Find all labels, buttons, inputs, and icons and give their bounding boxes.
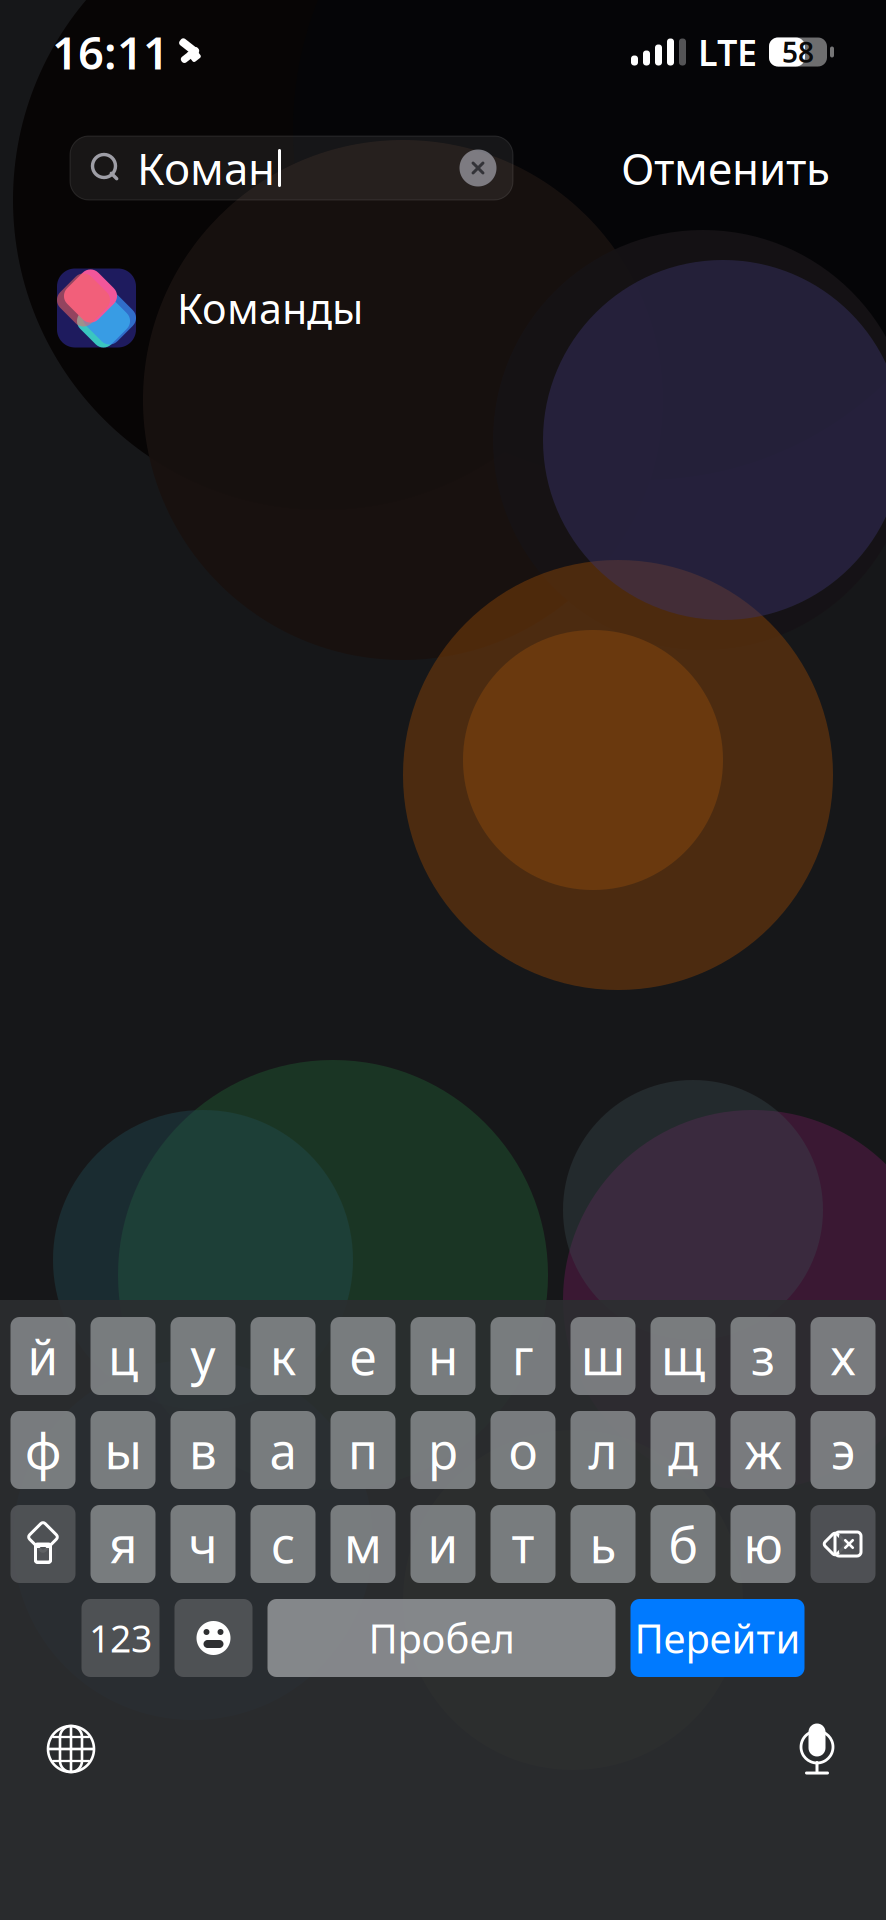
staticText: ь [589,1511,616,1577]
staticText: 16:11 [52,22,169,82]
staticText: н [428,1323,458,1389]
button[interactable]: х [810,1317,875,1395]
staticText: ч [188,1511,217,1577]
staticText: м [344,1511,382,1577]
staticText: т [511,1511,534,1577]
staticText: ю [743,1511,782,1577]
button[interactable]: Пробел [267,1599,615,1677]
staticText: с [271,1511,295,1577]
staticText: о [508,1417,537,1483]
button[interactable]: ь [570,1505,635,1583]
staticText: Отменить [621,139,830,197]
button[interactable]: м [330,1505,395,1583]
button[interactable]: Команды [0,258,886,358]
staticText: у [190,1323,215,1389]
button[interactable]: ш [570,1317,635,1395]
staticText: л [588,1417,617,1483]
button[interactable]: ю [730,1505,795,1583]
staticText: и [427,1511,458,1577]
button[interactable]: в [170,1411,235,1489]
staticText: щ [661,1323,705,1389]
button[interactable]: л [570,1411,635,1489]
button[interactable]: б [650,1505,715,1583]
staticText: е [349,1323,376,1389]
button[interactable]: з [730,1317,795,1395]
button[interactable]: щ [650,1317,715,1395]
staticText: ж [744,1417,781,1483]
button[interactable]: 123 [81,1599,159,1677]
button[interactable]: ф [10,1411,75,1489]
staticText: а [269,1417,296,1483]
staticText: й [27,1323,58,1389]
staticText: LTE [698,28,757,76]
staticText: э [831,1417,855,1483]
staticText: Коман [137,139,275,197]
staticText: з [751,1323,775,1389]
staticText: ц [108,1323,138,1389]
staticText: я [109,1511,137,1577]
button[interactable]: Диктовка [778,1705,856,1793]
button[interactable]: к [250,1317,315,1395]
staticText: ф [25,1417,61,1483]
button[interactable]: а [250,1411,315,1489]
staticText: Перейти [634,1611,800,1664]
button[interactable]: й [10,1317,75,1395]
staticText: 123 [89,1613,152,1663]
staticText: к [270,1323,296,1389]
button[interactable]: Перейти [630,1599,804,1677]
staticText: ы [104,1417,141,1483]
staticText: х [830,1323,855,1389]
staticText: р [428,1417,458,1483]
button[interactable]: я [90,1505,155,1583]
button[interactable]: н [410,1317,475,1395]
button[interactable]: Эмодзи [174,1599,252,1677]
button[interactable]: э [810,1411,875,1489]
staticText: ш [581,1323,625,1389]
button[interactable]: ы [90,1411,155,1489]
staticText: Команды [177,281,363,335]
staticText: б [668,1511,697,1577]
staticText: Пробел [368,1611,514,1664]
button[interactable]: Shift [10,1505,75,1583]
staticText: в [189,1417,217,1483]
button[interactable]: Сменить язык [30,1708,112,1790]
button[interactable]: г [490,1317,555,1395]
button[interactable]: ч [170,1505,235,1583]
button[interactable]: ж [730,1411,795,1489]
button[interactable]: о [490,1411,555,1489]
button[interactable]: ц [90,1317,155,1395]
staticText: п [348,1417,378,1483]
button[interactable]: у [170,1317,235,1395]
button[interactable]: р [410,1411,475,1489]
button[interactable]: с [250,1505,315,1583]
staticText: д [668,1417,698,1483]
button[interactable]: т [490,1505,555,1583]
staticText: 58 [782,33,814,71]
button[interactable]: и [410,1505,475,1583]
button[interactable]: е [330,1317,395,1395]
button[interactable]: Отменить [611,127,840,209]
button[interactable]: Очистить [451,141,505,195]
staticText: г [512,1323,534,1389]
button[interactable]: д [650,1411,715,1489]
button[interactable]: п [330,1411,395,1489]
button[interactable]: Удалить [810,1505,875,1583]
